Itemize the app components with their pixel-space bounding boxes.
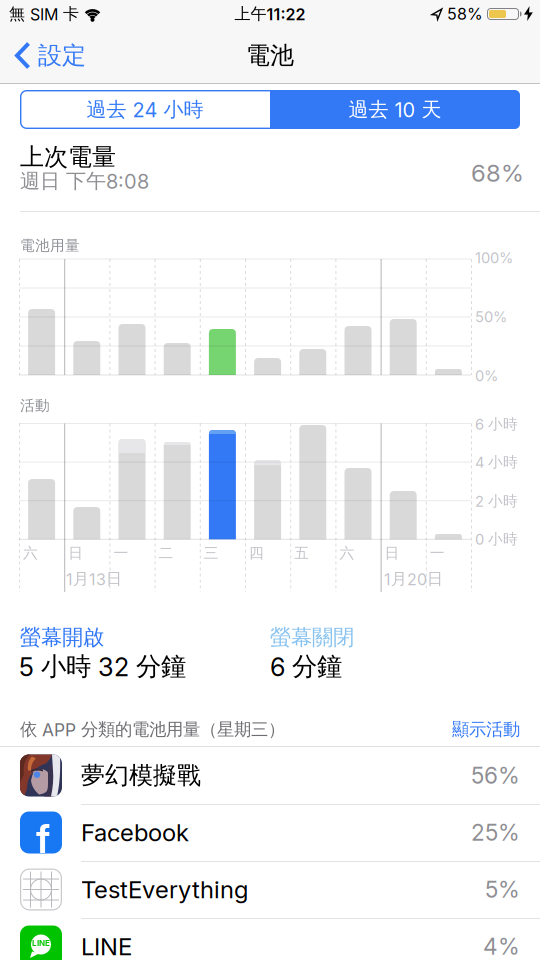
button[interactable]: 過去 24 小時 bbox=[20, 90, 270, 129]
staticText: 無 SIM 卡 bbox=[9, 4, 79, 24]
staticText: LINE bbox=[81, 932, 132, 960]
staticText: 58% bbox=[447, 5, 483, 23]
staticText: 5% bbox=[485, 876, 520, 903]
staticText: 上次電量 bbox=[20, 142, 116, 172]
staticText: 56% bbox=[471, 762, 520, 789]
staticText: 6 分鐘 bbox=[270, 651, 342, 682]
staticText: LINE bbox=[32, 938, 50, 948]
staticText: 5 小時 32 分鐘 bbox=[19, 651, 186, 682]
staticText: 螢幕關閉 bbox=[270, 624, 354, 651]
staticText: 電池 bbox=[246, 41, 294, 70]
staticText: 夢幻模擬戰 bbox=[81, 761, 201, 790]
staticText: 2 小時 bbox=[475, 492, 518, 510]
staticText: 五 bbox=[294, 544, 309, 562]
staticText: 上午11:22 bbox=[234, 4, 305, 24]
button[interactable]: LINE bbox=[0, 918, 540, 960]
staticText: 0% bbox=[475, 367, 498, 385]
staticText: 50% bbox=[475, 308, 507, 326]
staticText: Facebook bbox=[81, 818, 189, 847]
staticText: 六 bbox=[339, 544, 354, 562]
staticText: 依 APP 分類的電池用量（星期三） bbox=[20, 719, 285, 740]
button[interactable]: 夢幻模擬戰 bbox=[0, 747, 540, 804]
staticText: 六 bbox=[23, 544, 38, 562]
staticText: 6 小時 bbox=[475, 415, 518, 433]
button[interactable]: TestEverything bbox=[0, 861, 540, 918]
staticText: 一 bbox=[113, 544, 128, 562]
staticText: 1月13日 bbox=[66, 569, 122, 589]
staticText: 一 bbox=[430, 544, 445, 562]
staticText: 週日 下午8:08 bbox=[20, 169, 149, 193]
staticText: 4% bbox=[483, 933, 520, 960]
button[interactable]: 返回設定 bbox=[15, 28, 86, 83]
staticText: 0 小時 bbox=[475, 530, 518, 548]
staticText: 1月20日 bbox=[384, 569, 443, 589]
staticText: 二 bbox=[159, 544, 174, 562]
staticText: 螢幕開啟 bbox=[20, 624, 104, 651]
staticText: 活動 bbox=[20, 396, 50, 414]
staticText: 過去 10 天 bbox=[348, 97, 441, 122]
staticText: 過去 24 小時 bbox=[86, 97, 203, 122]
staticText: 電池用量 bbox=[20, 236, 80, 254]
staticText: 顯示活動 bbox=[452, 719, 520, 740]
staticText: 100% bbox=[475, 249, 513, 267]
staticText: f bbox=[36, 815, 50, 862]
staticText: TestEverything bbox=[81, 875, 248, 904]
button[interactable]: f bbox=[0, 804, 540, 861]
staticText: 三 bbox=[204, 544, 219, 562]
staticText: 日 bbox=[385, 544, 400, 562]
staticText: 68% bbox=[471, 159, 524, 187]
button[interactable]: 過去 10 天 bbox=[270, 90, 520, 129]
staticText: 4 小時 bbox=[475, 453, 518, 471]
staticText: 25% bbox=[471, 819, 520, 846]
button[interactable]: 顯示活動 bbox=[400, 717, 520, 742]
staticText: 四 bbox=[249, 544, 264, 562]
staticText: 設定 bbox=[38, 41, 86, 70]
staticText: 日 bbox=[68, 544, 83, 562]
